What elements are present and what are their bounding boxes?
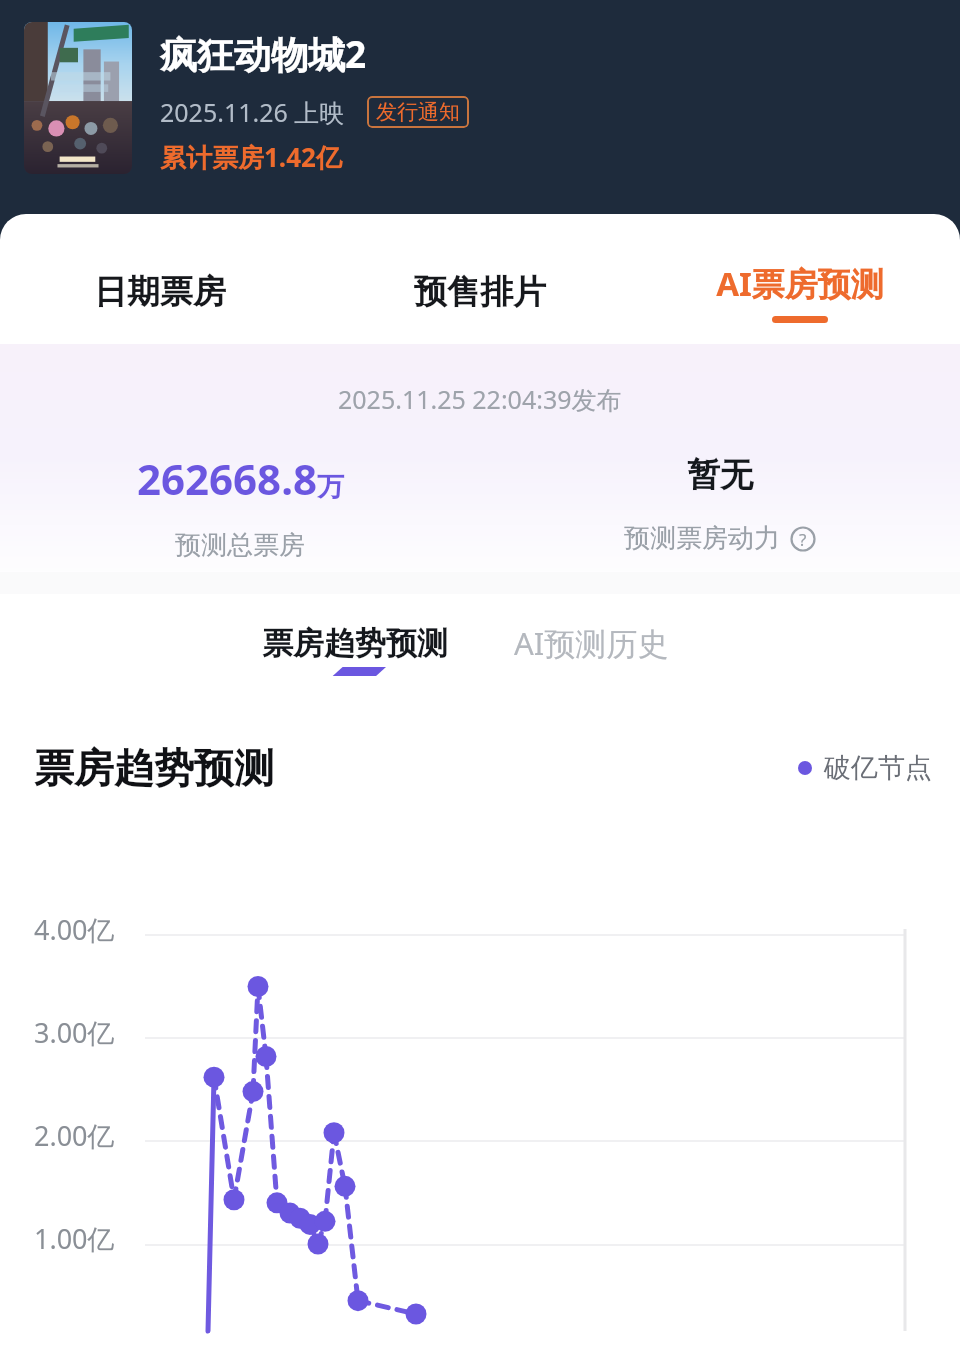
staticText: 万 [317, 470, 344, 504]
staticText: 1.00亿 [34, 1220, 115, 1257]
staticText: 疯狂动物城2 [160, 28, 367, 79]
staticText: 预测总票房 [175, 529, 305, 562]
staticText: 暂无 [687, 454, 753, 496]
staticText: ? [799, 528, 807, 551]
staticText: 262668.8 [137, 450, 317, 507]
staticText: AI票房预测 [716, 261, 884, 306]
staticText: 日期票房 [94, 271, 226, 313]
staticText: 预测票房动力 [624, 522, 780, 555]
button[interactable]: AI预测历史 [510, 616, 673, 683]
staticText: 2025.11.26 上映 [160, 95, 345, 129]
staticText: 发行通知 [376, 99, 460, 125]
button[interactable]: 电影海报 [24, 22, 132, 174]
button[interactable]: 票房趋势预测 [258, 618, 452, 682]
staticText: 2025.11.25 22:04:39发布 [338, 382, 622, 416]
staticText: 票房趋势预测 [262, 624, 448, 663]
button[interactable]: 预售排片 [320, 240, 640, 344]
button[interactable]: 发行通知 [367, 96, 469, 128]
staticText: 4.00亿 [34, 911, 115, 948]
staticText: 破亿节点 [824, 751, 932, 785]
staticText: AI预测历史 [514, 622, 669, 664]
staticText: 2.00亿 [34, 1117, 115, 1154]
other: 说明 [790, 526, 816, 552]
staticText: 预售排片 [414, 271, 546, 313]
button[interactable]: AI票房预测 [640, 240, 960, 344]
button[interactable]: 日期票房 [0, 240, 320, 344]
staticText: 票房趋势预测 [34, 743, 274, 793]
staticText: 累计票房1.42亿 [160, 139, 342, 175]
button[interactable]: 预测票房动力 [624, 522, 816, 555]
staticText: 3.00亿 [34, 1014, 115, 1051]
